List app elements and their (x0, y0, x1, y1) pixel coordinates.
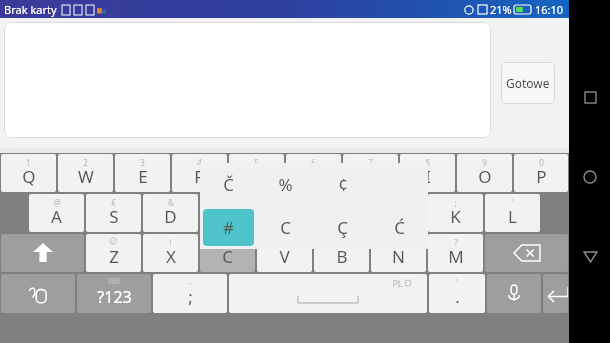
staticText: € (111, 197, 116, 208)
staticText: Z (109, 245, 119, 268)
button[interactable]: Home (579, 166, 601, 188)
button[interactable]: 8 (400, 154, 455, 192)
button[interactable]: = (257, 234, 312, 272)
staticText: P (536, 165, 547, 188)
staticText: O (478, 165, 492, 188)
button[interactable]: Ć (374, 209, 425, 246)
staticText: M (448, 245, 464, 268)
staticText: G (278, 205, 291, 228)
button[interactable]: Gotowe (501, 62, 555, 104)
staticText: ; (454, 197, 457, 208)
button[interactable]: Recent apps (579, 86, 601, 108)
button[interactable]: 2 (58, 154, 113, 192)
staticText: ☺ (109, 237, 118, 246)
button[interactable]: 1 (1, 154, 56, 192)
staticText: H (335, 205, 348, 228)
staticText: . (455, 285, 460, 308)
button[interactable]: & (143, 194, 198, 232)
button[interactable]: + (371, 234, 426, 272)
button[interactable]: Handwriting (1, 274, 75, 313)
button[interactable]: - (153, 274, 227, 313)
staticText: / (340, 237, 343, 248)
button[interactable]: ? (428, 234, 483, 272)
staticText: # (225, 237, 231, 248)
staticText: @ (53, 197, 61, 208)
staticText: E (138, 165, 148, 188)
button[interactable]: ' (485, 194, 540, 232)
button[interactable]: C (260, 209, 311, 246)
staticText: 7 (368, 157, 373, 168)
staticText: ⌨ (108, 277, 120, 286)
button[interactable]: 3 (115, 154, 170, 192)
button[interactable]: ; (428, 194, 483, 232)
button[interactable]: ' (429, 274, 485, 313)
button[interactable]: # (203, 209, 254, 246)
staticText: ! (169, 237, 172, 248)
staticText: B (336, 245, 348, 268)
staticText: & (168, 197, 174, 208)
button[interactable] (4, 22, 491, 138)
staticText: L (508, 205, 517, 228)
staticText: Gotowe (506, 75, 550, 91)
staticText: F (223, 205, 232, 228)
staticText: ¢ (338, 173, 348, 196)
button[interactable]: @ (29, 194, 84, 232)
staticText: J (396, 205, 401, 228)
staticText: Q (22, 165, 36, 188)
staticText: X (166, 245, 176, 268)
button[interactable]: Enter (543, 274, 568, 313)
staticText: ; (188, 285, 193, 308)
staticText: S (109, 205, 119, 228)
button[interactable]: 9 (457, 154, 512, 192)
staticText: Brak karty (4, 2, 57, 17)
button[interactable]: / (314, 234, 369, 272)
staticText: PL (392, 277, 403, 289)
button[interactable]: Voice input (487, 274, 541, 313)
button[interactable]: 4 (172, 154, 227, 192)
staticText: 0 (539, 157, 544, 168)
staticText: ? (454, 237, 458, 248)
button[interactable]: Ç (317, 209, 368, 246)
staticText: ?123 (97, 286, 132, 308)
button[interactable]: 7 (343, 154, 398, 192)
button[interactable]: # (200, 234, 255, 272)
button[interactable]: ) (371, 194, 426, 232)
staticText: Č (223, 173, 234, 196)
button[interactable]: ⌨ (77, 274, 151, 313)
button[interactable]: € (86, 194, 141, 232)
button[interactable]: Shift (1, 234, 84, 272)
staticText: C (222, 245, 233, 268)
staticText: ' (512, 197, 514, 208)
button[interactable]: 6 (286, 154, 341, 192)
staticText: 9 (482, 157, 487, 168)
button[interactable]: ( (314, 194, 369, 232)
button[interactable]: 0 (514, 154, 568, 192)
staticText: - (189, 277, 192, 288)
staticText: 4 (197, 157, 202, 168)
staticText: 6 (311, 157, 316, 168)
button[interactable]: ☺ (86, 234, 141, 272)
staticText: W (78, 165, 94, 188)
staticText: A (51, 205, 62, 228)
button[interactable]: - (200, 194, 255, 232)
staticText: Ć (394, 216, 405, 239)
button[interactable]: + (257, 194, 312, 232)
staticText: 16:10 (535, 2, 564, 17)
staticText: D (164, 205, 177, 228)
button[interactable]: 5 (229, 154, 284, 192)
button[interactable]: Space (229, 274, 427, 313)
button[interactable]: Backspace (485, 234, 568, 272)
staticText: K (450, 205, 461, 228)
button[interactable]: Back (579, 246, 601, 268)
staticText: R (194, 165, 205, 188)
button[interactable]: ! (143, 234, 198, 272)
staticText: 5 (254, 157, 259, 168)
staticText: 8 (425, 157, 430, 168)
